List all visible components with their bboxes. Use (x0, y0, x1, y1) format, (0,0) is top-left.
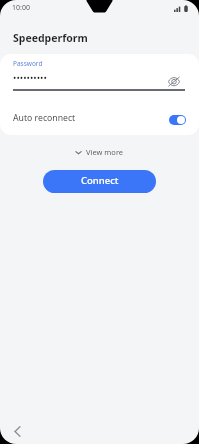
button[interactable]: View more (0, 145, 199, 159)
button[interactable]: Show password (166, 73, 182, 89)
staticText: •••••••••• (13, 71, 47, 83)
staticText: 10:00 (12, 3, 30, 13)
button[interactable]: Connect (43, 170, 156, 193)
staticText: Connect (81, 174, 119, 187)
staticText: View more (86, 147, 124, 157)
staticText: Speedperform (13, 31, 88, 45)
button[interactable]: Back (8, 422, 26, 440)
staticText: Password (13, 59, 43, 68)
staticText: Auto reconnect (13, 112, 169, 124)
button[interactable]: Auto reconnect (0, 108, 199, 128)
